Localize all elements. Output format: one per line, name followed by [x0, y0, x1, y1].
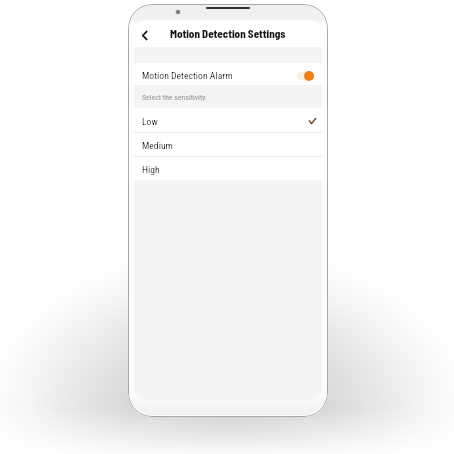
- button[interactable]: Medium: [134, 133, 322, 156]
- staticText: High: [142, 164, 160, 175]
- staticText: Medium: [142, 140, 173, 151]
- staticText: Motion Detection Alarm: [142, 70, 233, 81]
- other: Selected: [309, 118, 316, 124]
- button[interactable]: Low: [134, 108, 322, 132]
- button[interactable]: Motion Detection Alarm: [134, 63, 322, 85]
- staticText: Low: [142, 116, 158, 127]
- button[interactable]: High: [134, 157, 322, 180]
- button[interactable]: Back: [135, 26, 154, 45]
- staticText: Select the sensitivity: [142, 93, 206, 102]
- staticText: Motion Detection Settings: [170, 27, 286, 40]
- other: Motion Detection Alarm toggle: [298, 69, 316, 80]
